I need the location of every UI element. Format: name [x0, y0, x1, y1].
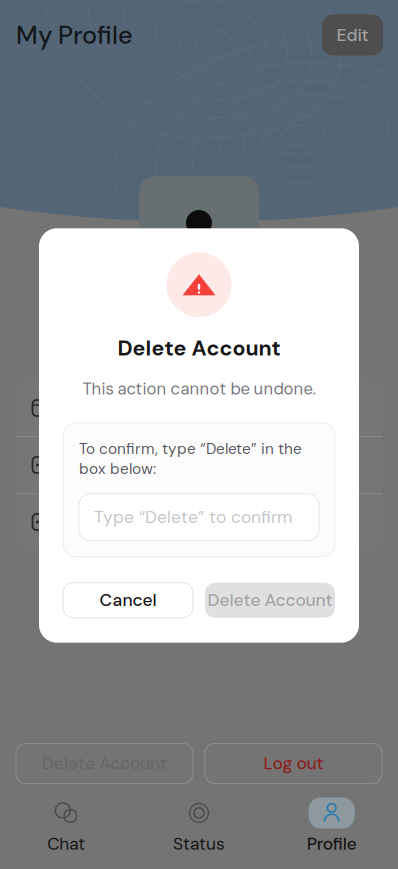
staticText: Type “Delete” to confirm	[94, 506, 292, 528]
button[interactable]: Log out	[205, 743, 382, 783]
button[interactable]: Profile	[265, 797, 398, 855]
button[interactable]: Delete Account	[205, 583, 335, 618]
button[interactable]: Chat	[0, 797, 133, 855]
button[interactable]	[16, 494, 382, 550]
button[interactable]: Cancel	[63, 583, 193, 618]
button[interactable]	[16, 437, 382, 493]
staticText: Status	[173, 832, 225, 855]
staticText: My Profile	[16, 18, 133, 51]
staticText: Cancel	[99, 589, 156, 611]
staticText: Delete Account	[207, 589, 332, 611]
button[interactable]: Edit	[322, 14, 383, 55]
button[interactable]	[16, 380, 382, 436]
staticText: Chat	[47, 832, 85, 855]
staticText: This action cannot be undone.	[82, 378, 315, 400]
staticText: Profile	[307, 832, 357, 855]
staticText: Edit	[336, 24, 368, 46]
staticText: Log out	[263, 752, 323, 775]
button[interactable]: Delete Account	[16, 743, 193, 783]
button[interactable]: Status	[133, 797, 265, 855]
staticText: Delete Account	[117, 334, 280, 362]
staticText: To confirm, type “Delete” in the box bel…	[79, 439, 302, 479]
staticText: Delete Account	[42, 752, 167, 775]
